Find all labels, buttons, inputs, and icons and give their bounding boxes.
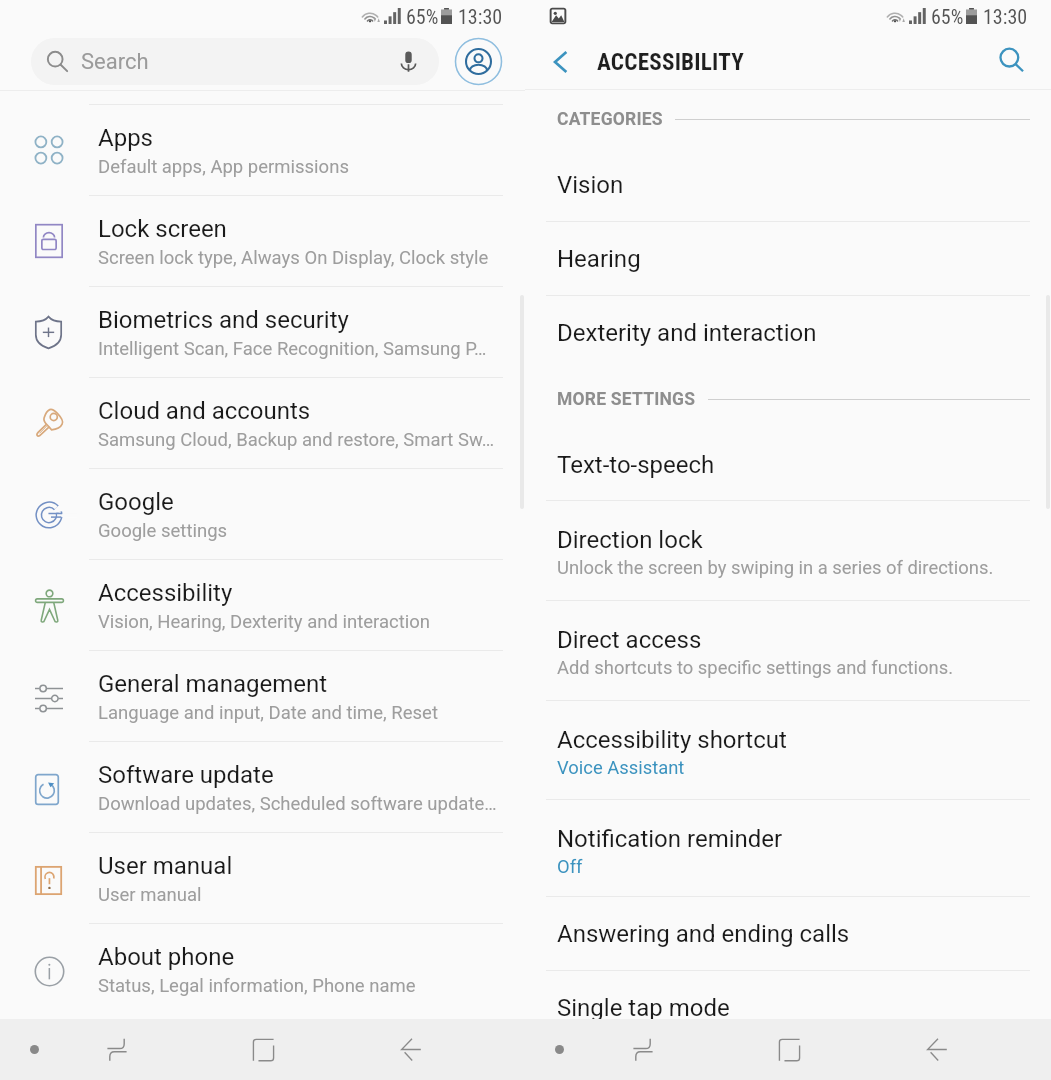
button[interactable]: General management	[0, 650, 525, 741]
staticText: MORE SETTINGS	[557, 389, 696, 410]
button[interactable]: Hearing	[525, 222, 1051, 296]
staticText: Google settings	[98, 520, 228, 542]
button[interactable]: Cloud and accounts	[0, 377, 525, 468]
button[interactable]: Notification reminder	[525, 800, 1051, 897]
button[interactable]: Back	[542, 42, 579, 82]
staticText: Biometrics and security	[98, 306, 349, 334]
button[interactable]: Recent apps	[569, 1019, 716, 1080]
staticText: Direction lock	[557, 526, 703, 554]
button[interactable]: Back	[337, 1019, 484, 1080]
button[interactable]: Vision	[525, 148, 1051, 222]
staticText: Intelligent Scan, Face Recognition, Sams…	[98, 338, 487, 360]
button[interactable]: Home	[716, 1019, 863, 1080]
staticText: Single tap mode	[557, 994, 730, 1019]
staticText: Text-to-speech	[557, 451, 715, 479]
staticText: CATEGORIES	[557, 109, 663, 130]
staticText: Add shortcuts to specific settings and f…	[557, 657, 954, 679]
staticText: Dexterity and interaction	[557, 319, 817, 347]
button[interactable]: Apps	[0, 104, 525, 195]
button[interactable]: Accessibility shortcut	[525, 701, 1051, 800]
button[interactable]: Dexterity and interaction	[525, 296, 1051, 370]
button[interactable]: User manual	[0, 832, 525, 923]
staticText: Apps	[98, 124, 153, 152]
staticText: Voice Assistant	[557, 757, 685, 779]
button[interactable]: Hide navigation bar	[16, 1031, 53, 1068]
button[interactable]: Account	[454, 37, 503, 86]
staticText: Vision, Hearing, Dexterity and interacti…	[98, 611, 430, 633]
button[interactable]: Direction lock	[525, 501, 1051, 601]
button[interactable]: Search	[31, 38, 439, 85]
staticText: Off	[557, 856, 583, 878]
staticText: General management	[98, 670, 328, 698]
button[interactable]: Direct access	[525, 601, 1051, 701]
staticText: 65%	[931, 5, 964, 28]
staticText: Hearing	[557, 245, 641, 273]
staticText: 13:30	[458, 5, 503, 28]
button[interactable]: Answering and ending calls	[525, 897, 1051, 971]
staticText: Download updates, Scheduled software upd…	[98, 793, 497, 815]
button[interactable]: Recent apps	[44, 1019, 190, 1080]
staticText: Software update	[98, 761, 274, 789]
button[interactable]: Back	[863, 1019, 1010, 1080]
staticText: User manual	[98, 852, 233, 880]
button[interactable]: Software update	[0, 741, 525, 832]
staticText: Language and input, Date and time, Reset	[98, 702, 438, 724]
button[interactable]: Hide navigation bar	[541, 1031, 578, 1068]
staticText: 65%	[406, 5, 439, 28]
button[interactable]: Home	[190, 1019, 337, 1080]
staticText: About phone	[98, 943, 235, 971]
staticText: ACCESSIBILITY	[597, 48, 744, 75]
staticText: Accessibility shortcut	[557, 726, 787, 754]
staticText: Status, Legal information, Phone name	[98, 975, 416, 997]
staticText: Answering and ending calls	[557, 920, 850, 948]
staticText: Cloud and accounts	[98, 397, 311, 425]
button[interactable]: Biometrics and security	[0, 286, 525, 377]
button[interactable]: Google	[0, 468, 525, 559]
staticText: Google	[98, 488, 174, 516]
button[interactable]: About phone	[0, 923, 525, 1014]
staticText: Notification reminder	[557, 825, 783, 853]
staticText: Vision	[557, 171, 624, 199]
button[interactable]: Text-to-speech	[525, 428, 1051, 501]
staticText: Direct access	[557, 626, 702, 654]
staticText: Default apps, App permissions	[98, 156, 349, 178]
button[interactable]: Accessibility	[0, 559, 525, 650]
staticText: Samsung Cloud, Backup and restore, Smart…	[98, 429, 495, 451]
button[interactable]: Single tap mode	[525, 971, 1051, 1019]
staticText: Screen lock type, Always On Display, Clo…	[98, 247, 489, 269]
staticText: Accessibility	[98, 579, 233, 607]
staticText: Unlock the screen by swiping in a series…	[557, 557, 994, 579]
staticText: 13:30	[983, 5, 1028, 28]
button[interactable]: Lock screen	[0, 195, 525, 286]
staticText: Search	[81, 49, 149, 75]
button[interactable]: Search	[992, 40, 1032, 80]
staticText: User manual	[98, 884, 202, 906]
staticText: Lock screen	[98, 215, 227, 243]
